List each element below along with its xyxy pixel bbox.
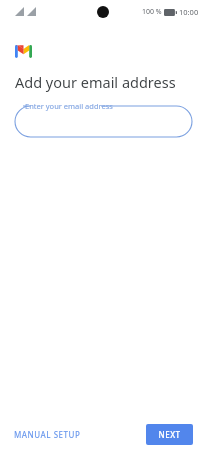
- other: Gmail: [15, 45, 32, 58]
- button[interactable]: NEXT: [146, 424, 193, 445]
- staticText: MANUAL SETUP: [14, 429, 81, 440]
- staticText: NEXT: [158, 429, 181, 440]
- staticText: 100 %: [142, 7, 162, 17]
- staticText: 10:00: [179, 7, 199, 17]
- staticText: Add your email address: [15, 72, 176, 92]
- button[interactable]: MANUAL SETUP: [8, 424, 87, 445]
- staticText: Enter your email address: [25, 101, 113, 111]
- button[interactable]: Enter your email address: [15, 106, 192, 137]
